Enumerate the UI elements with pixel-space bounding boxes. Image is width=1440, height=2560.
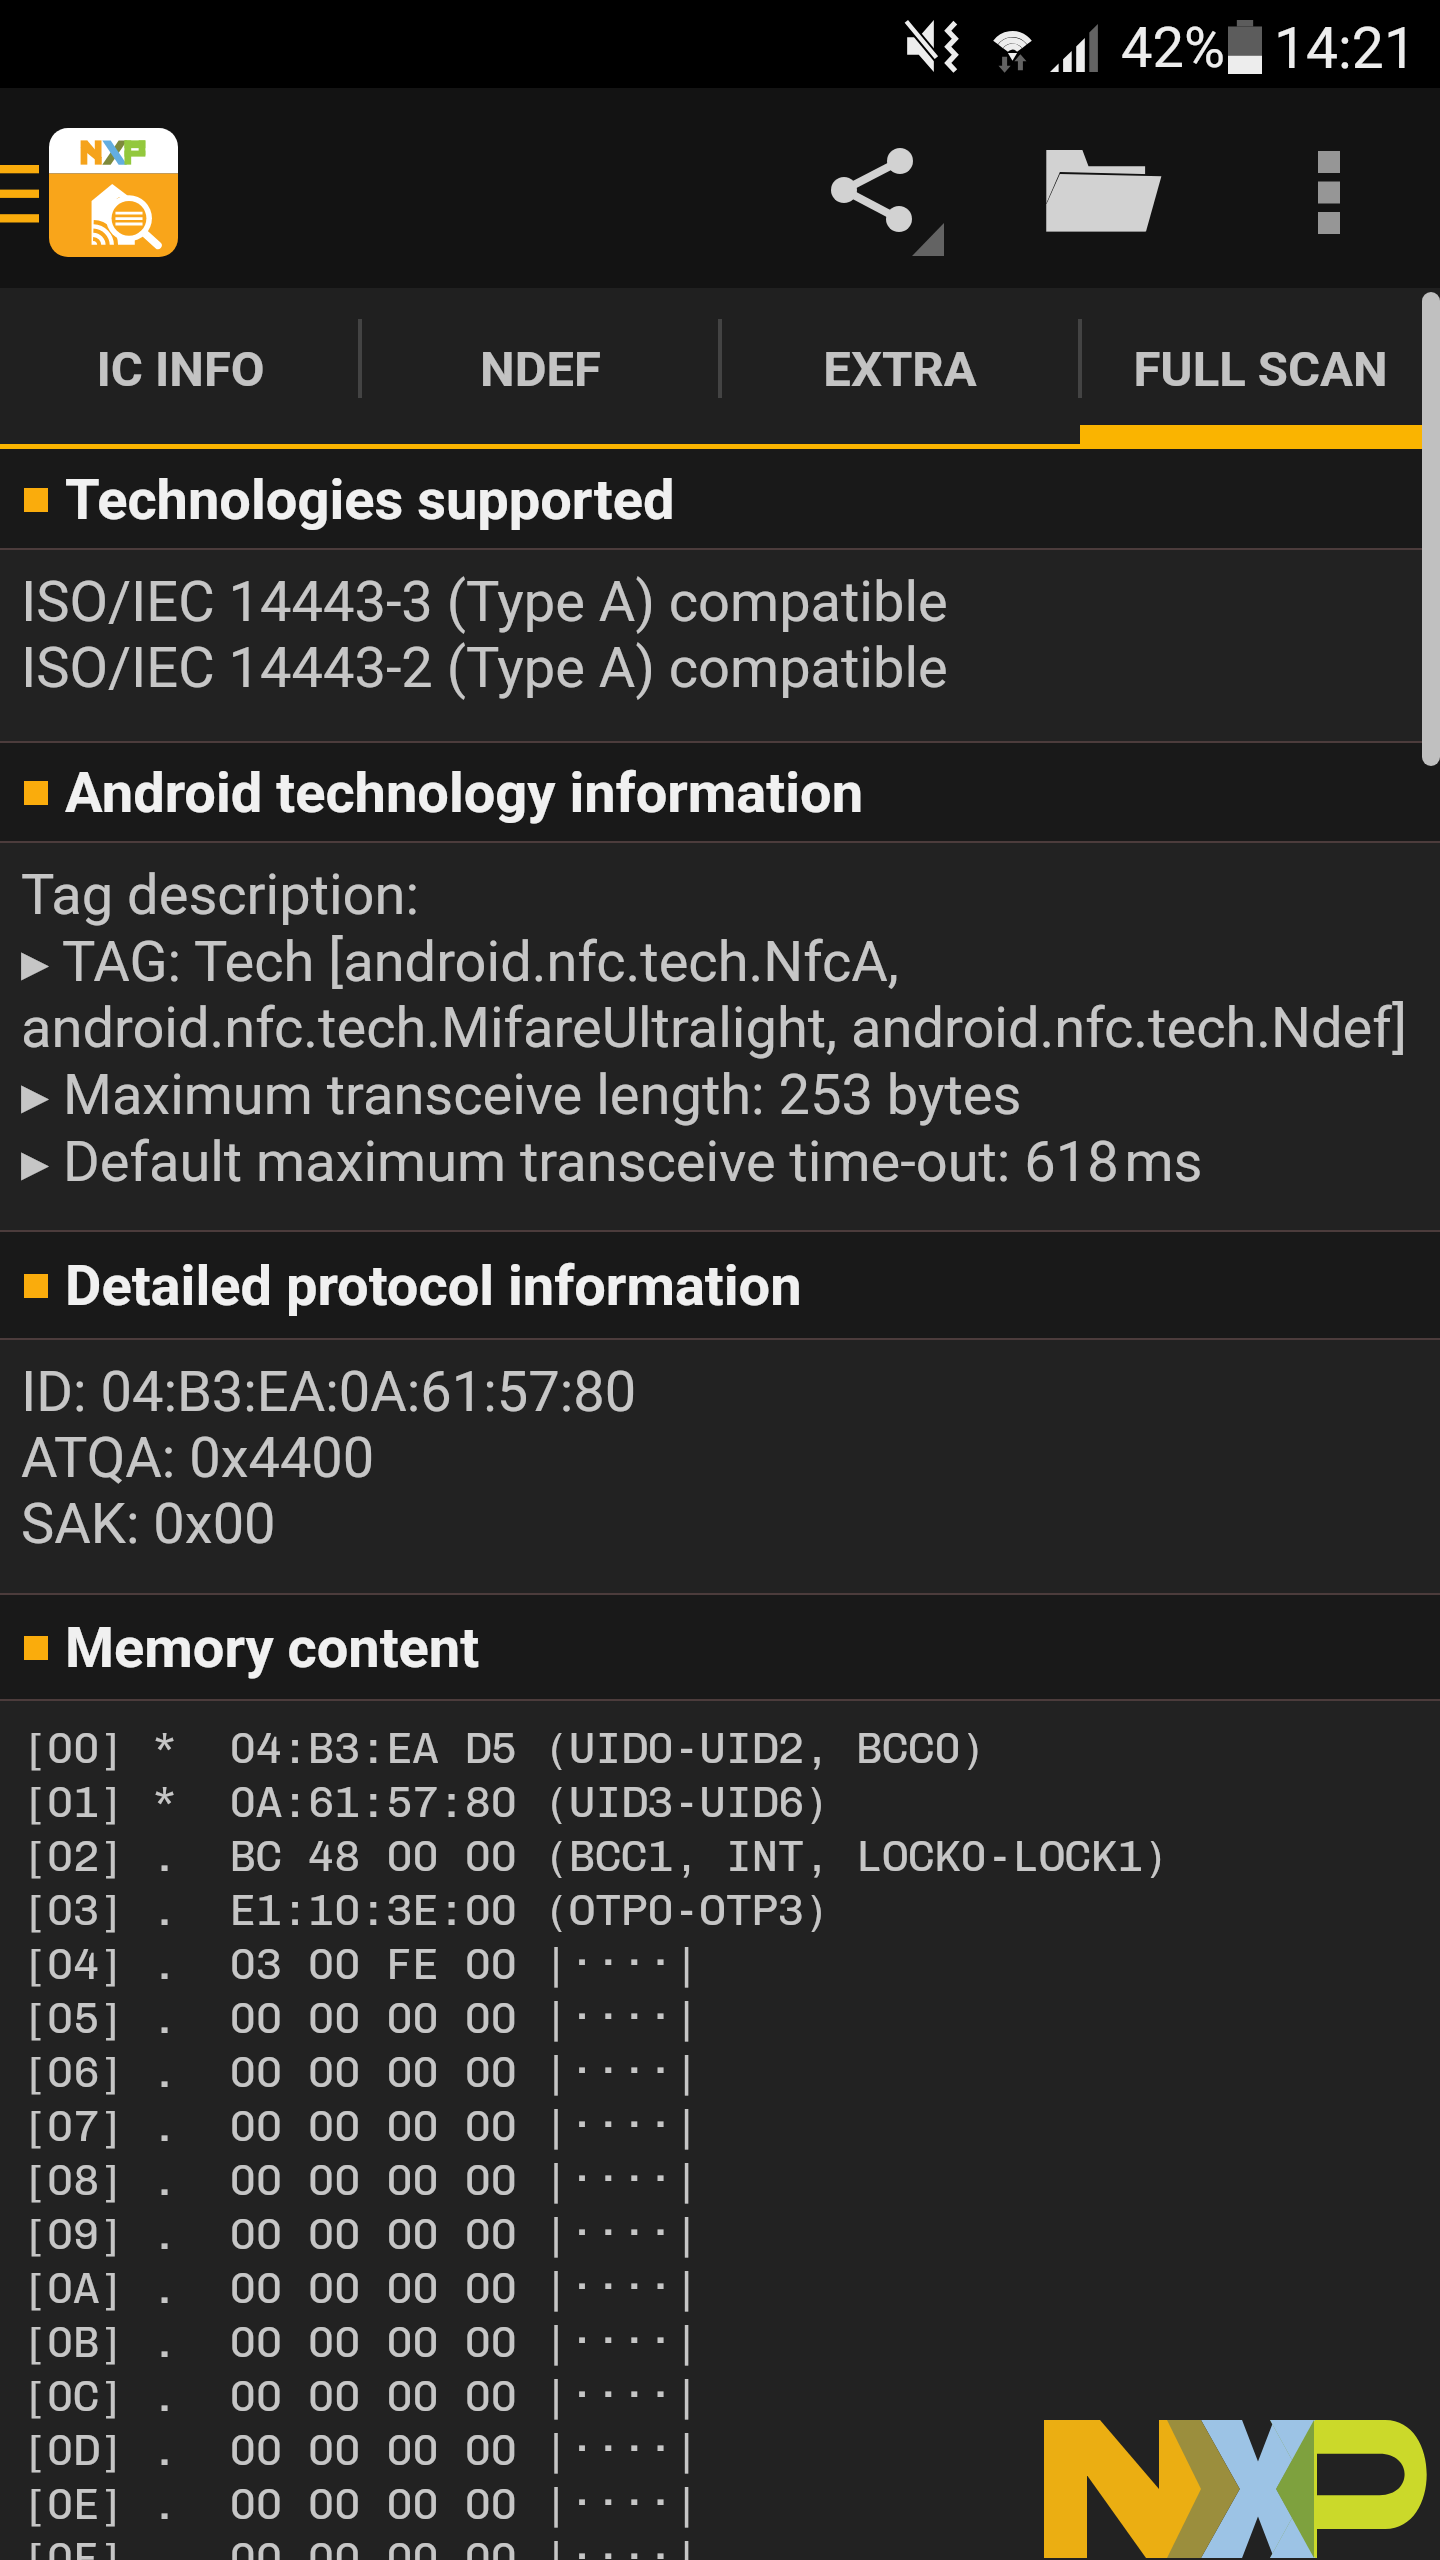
button[interactable]: Android technology information [0, 743, 1440, 843]
staticText: [06] . 00 00 00 00 |····| [21, 2044, 700, 2098]
staticText: [0F] . 00 00 00 00 |····| [21, 2530, 700, 2560]
staticText: EXTRA [823, 341, 977, 398]
staticText: Detailed protocol information [65, 1253, 802, 1319]
staticText: [0A] . 00 00 00 00 |····| [21, 2260, 700, 2314]
staticText: ISO/IEC 14443-3 (Type A) compatible [21, 569, 948, 635]
staticText: [02] . BC 48 00 00 (BCC1, INT, LOCK0-LOC… [21, 1828, 1170, 1882]
staticText: ID: 04:B3:EA:0A:61:57:80 [21, 1359, 637, 1425]
staticText: SAK: 0x00 [21, 1491, 276, 1557]
staticText: Android technology information [65, 760, 864, 826]
staticText: [01] * 0A:61:57:80 (UID3-UID6) [21, 1774, 831, 1828]
button[interactable]: Memory content [0, 1595, 1440, 1701]
staticText: [09] . 00 00 00 00 |····| [21, 2206, 700, 2260]
staticText: [0E] . 00 00 00 00 |····| [21, 2476, 700, 2530]
button[interactable]: IC INFO [0, 288, 360, 425]
staticText: [0C] . 00 00 00 00 |····| [21, 2368, 700, 2422]
button[interactable]: Detailed protocol information [0, 1232, 1440, 1340]
staticText: ATQA: 0x4400 [21, 1425, 375, 1491]
staticText: ISO/IEC 14443-2 (Type A) compatible [21, 635, 948, 701]
button[interactable]: FULL SCAN [1080, 288, 1440, 425]
staticText: [0B] . 00 00 00 00 |····| [21, 2314, 700, 2368]
staticText: NDEF [480, 341, 601, 398]
button[interactable]: Share [790, 88, 980, 288]
staticText: FULL SCAN [1133, 341, 1388, 398]
staticText: 42% [1121, 15, 1225, 81]
staticText: [07] . 00 00 00 00 |····| [21, 2098, 700, 2152]
staticText: android.nfc.tech.MifareUltralight, andro… [21, 995, 1408, 1061]
staticText: 14:21 [1274, 15, 1416, 82]
staticText: [00] * 04:B3:EA D5 (UID0-UID2, BCC0) [21, 1720, 987, 1774]
staticText: [0D] . 00 00 00 00 |····| [21, 2422, 700, 2476]
staticText: [08] . 00 00 00 00 |····| [21, 2152, 700, 2206]
button[interactable]: More options [1280, 88, 1380, 288]
staticText: [03] . E1:10:3E:00 (OTP0-OTP3) [21, 1882, 831, 1936]
staticText: [04] . 03 00 FE 00 |····| [21, 1936, 700, 1990]
staticText: [05] . 00 00 00 00 |····| [21, 1990, 700, 2044]
staticText: Memory content [65, 1615, 480, 1681]
staticText: IC INFO [96, 341, 265, 398]
staticText: Technologies supported [65, 467, 675, 533]
button[interactable]: Navigate up [0, 88, 190, 288]
button[interactable]: NDEF [360, 288, 720, 425]
staticText: ▸ Maximum transceive length: 253 bytes [21, 1061, 1022, 1128]
staticText: Tag description: [21, 862, 420, 928]
button[interactable]: EXTRA [720, 288, 1080, 425]
staticText: ▸ TAG: Tech [android.nfc.tech.NfcA, [21, 928, 899, 995]
button[interactable]: Open file [1000, 88, 1200, 288]
staticText: ▸ Default maximum transceive time-out: 6… [21, 1128, 1203, 1195]
button[interactable]: Technologies supported [0, 449, 1440, 550]
